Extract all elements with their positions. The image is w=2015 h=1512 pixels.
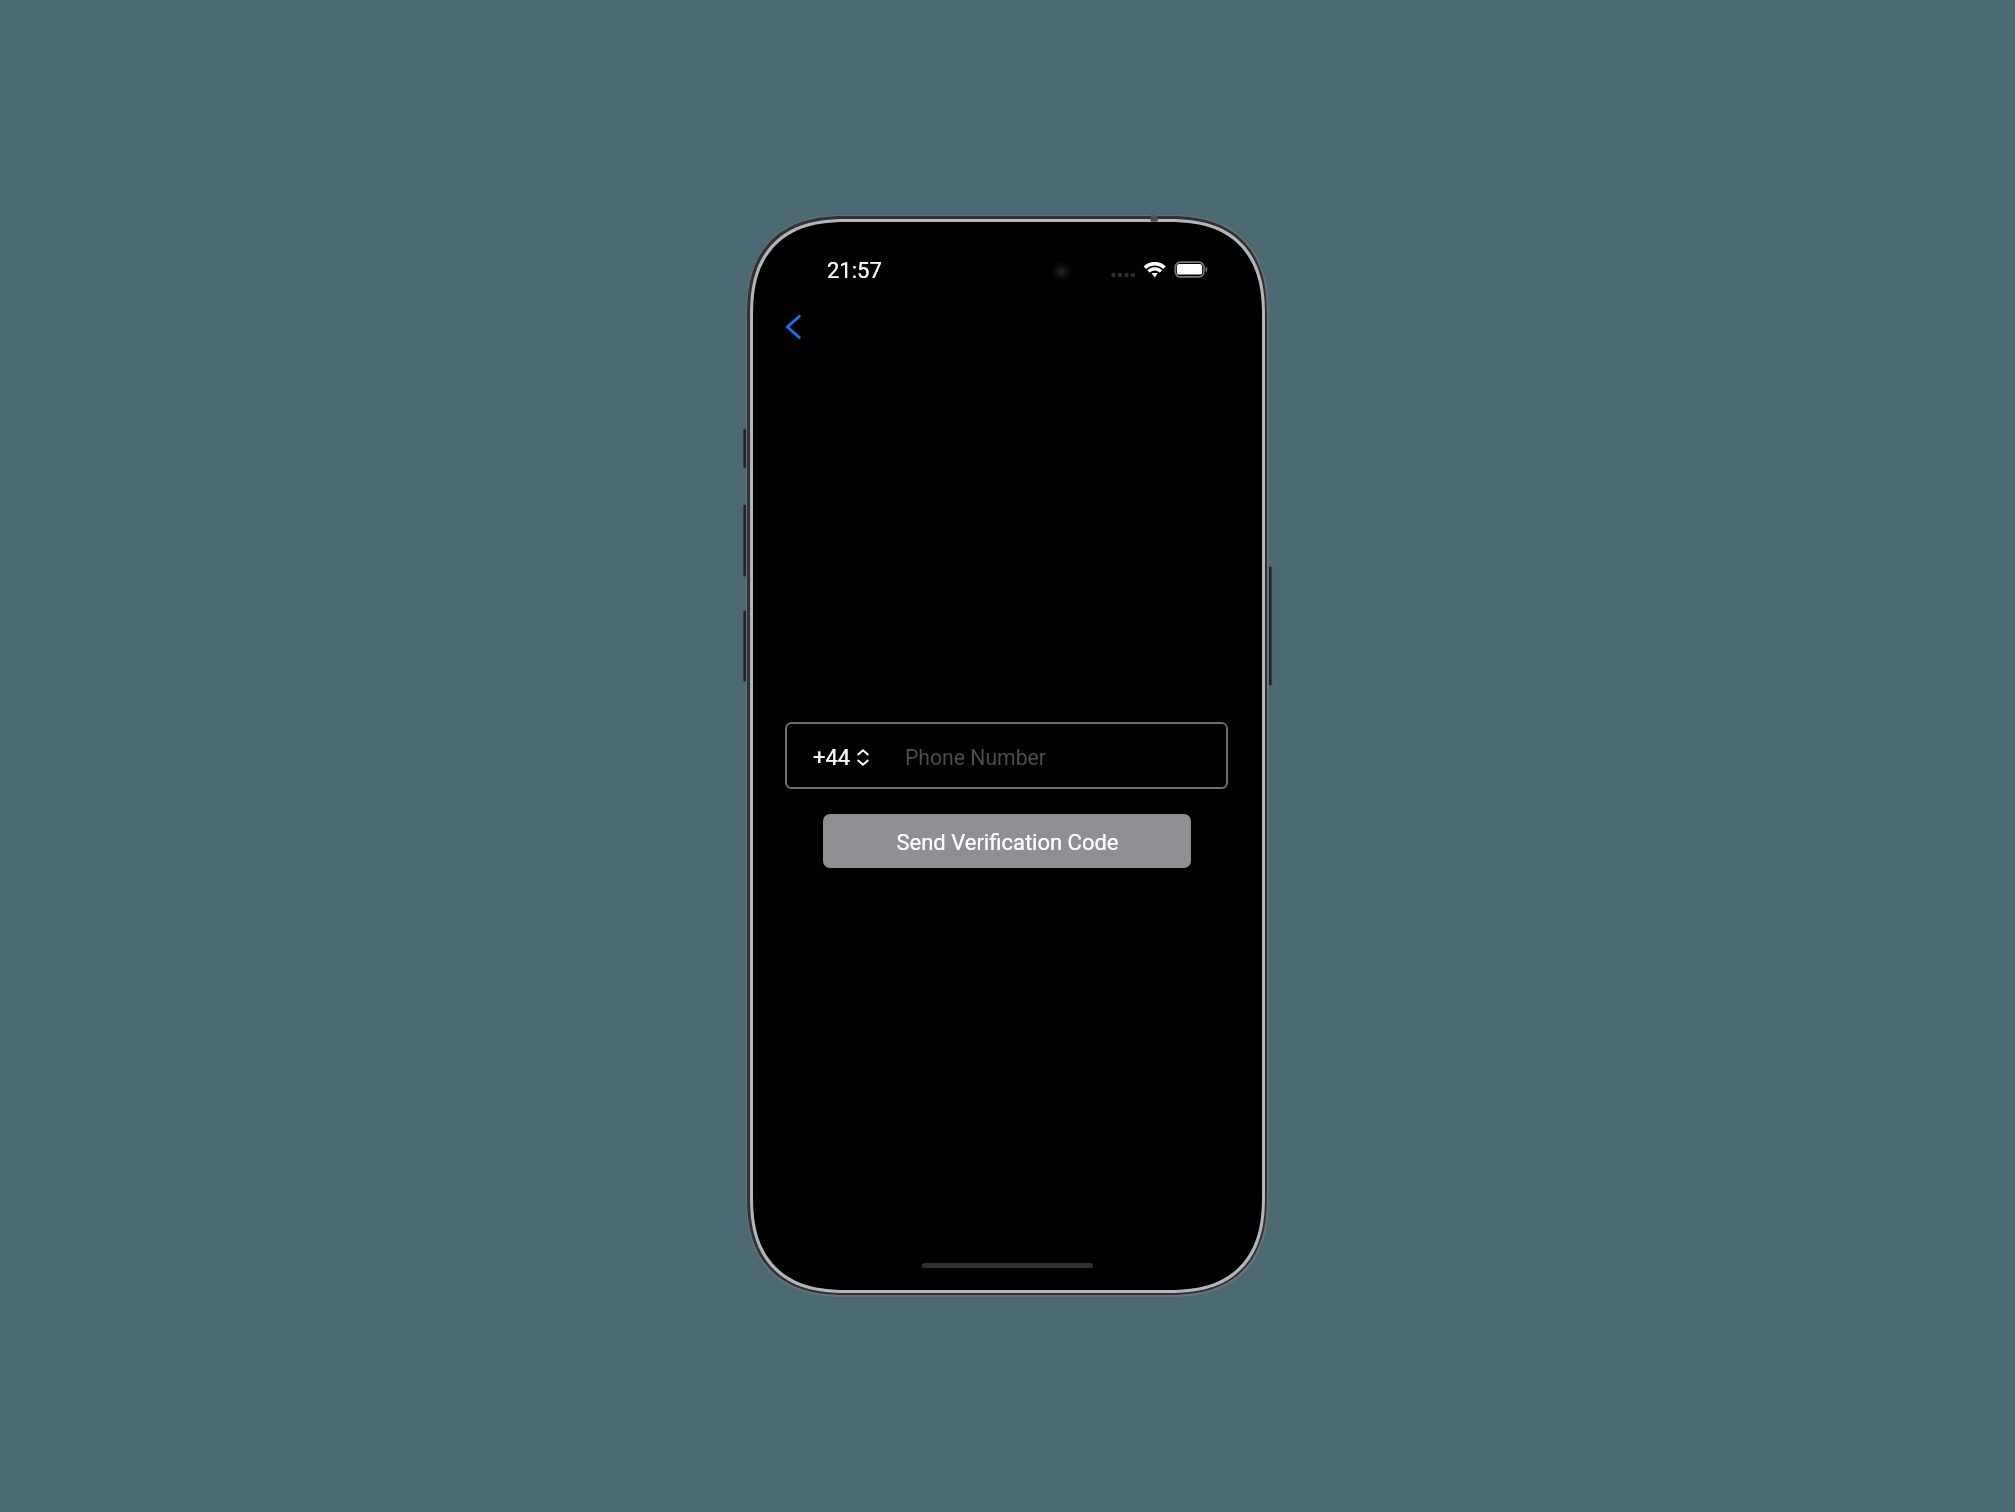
button[interactable]: Back — [767, 302, 819, 352]
button[interactable]: +44 — [785, 722, 1228, 789]
staticText: Send Verification Code — [896, 830, 1119, 856]
button[interactable]: Send Verification Code — [823, 814, 1191, 868]
staticText: Phone Number — [905, 745, 1046, 770]
staticText: +44 — [813, 745, 851, 771]
staticText: 21:57 — [827, 258, 882, 284]
